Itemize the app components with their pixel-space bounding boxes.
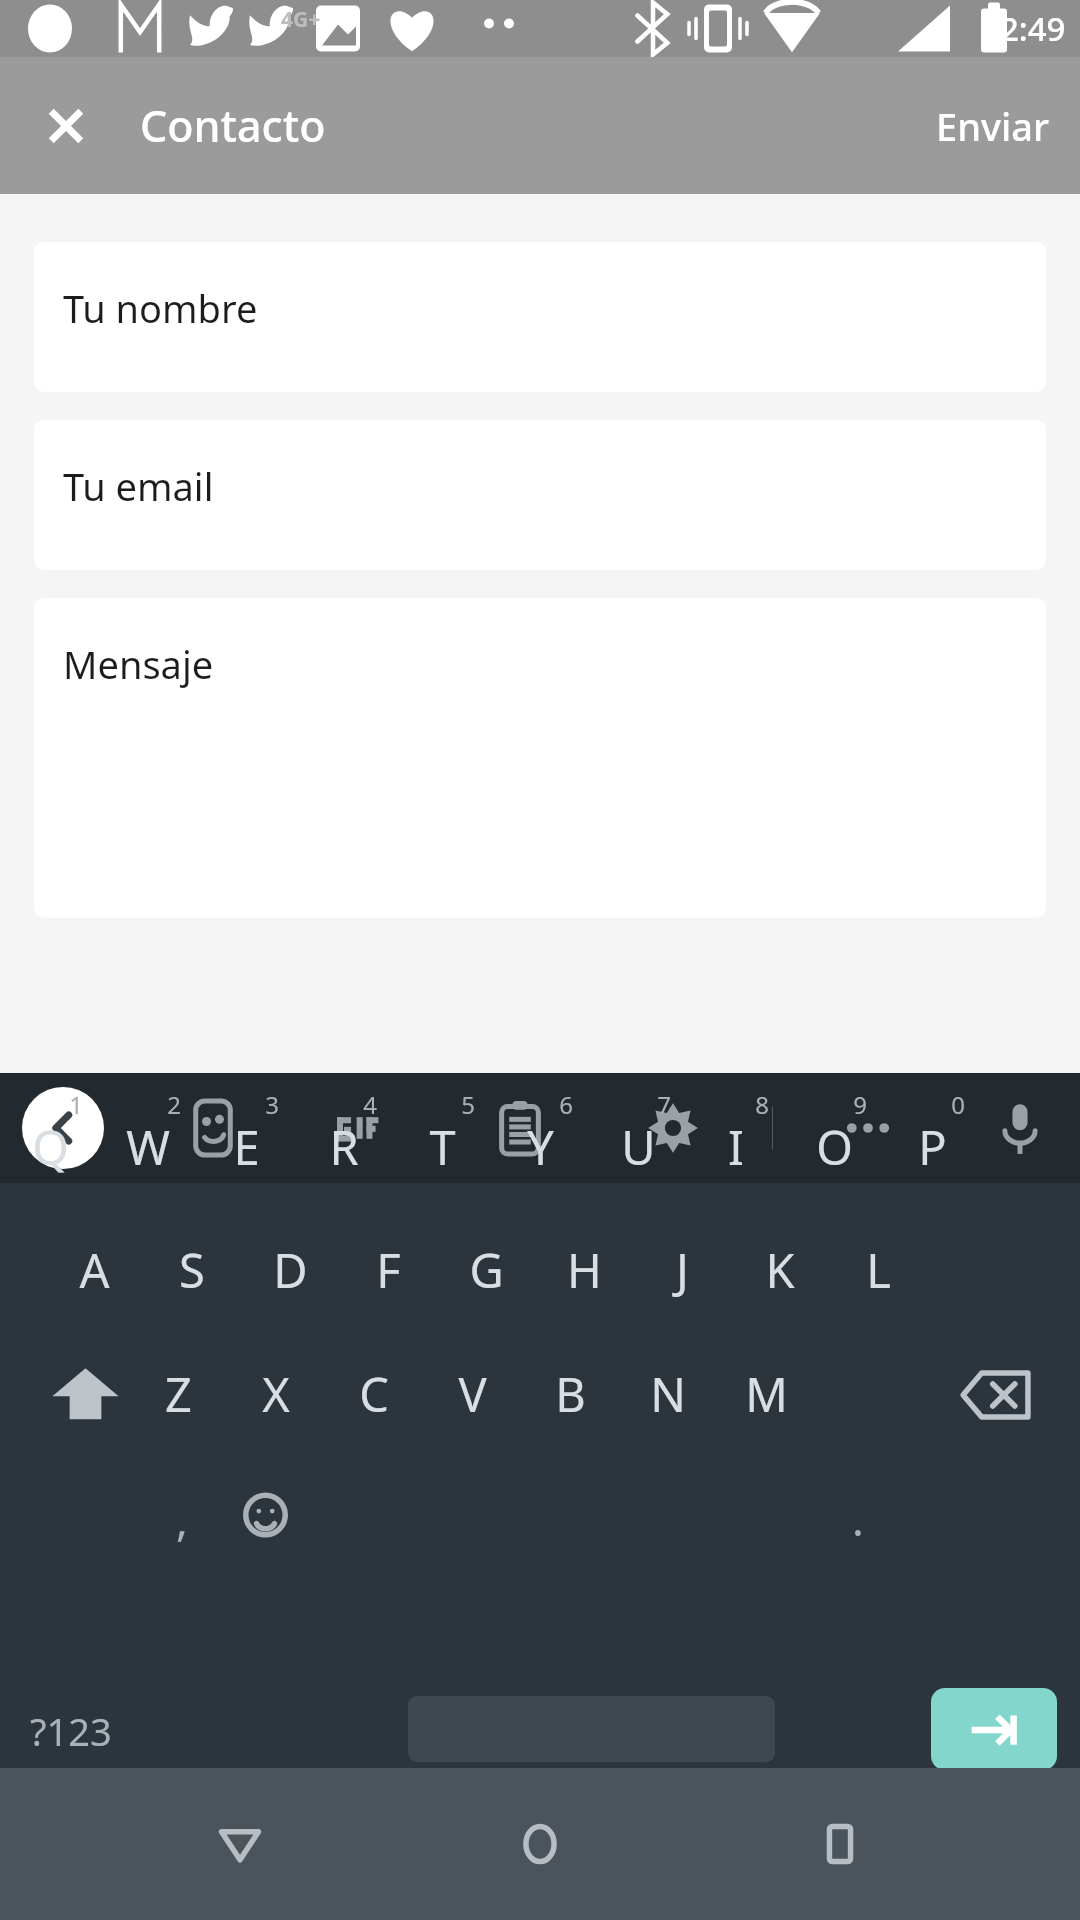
staticText: ?123: [30, 1705, 112, 1757]
button[interactable]: Tu email: [34, 420, 1046, 570]
button[interactable]: C: [325, 1346, 423, 1442]
staticText: P: [918, 1115, 947, 1179]
staticText: J: [676, 1238, 689, 1302]
button[interactable]: S: [143, 1222, 241, 1318]
staticText: S: [179, 1238, 205, 1302]
staticText: 4G+: [281, 5, 321, 34]
staticText: K: [765, 1238, 795, 1302]
staticText: Z: [165, 1362, 192, 1426]
button[interactable]: F: [339, 1222, 437, 1318]
staticText: I: [728, 1115, 744, 1179]
button[interactable]: O: [785, 1099, 883, 1195]
button[interactable]: 3: [223, 1056, 321, 1152]
staticText: B: [555, 1362, 586, 1426]
staticText: C: [359, 1362, 389, 1426]
button[interactable]: 0: [909, 1056, 1007, 1152]
staticText: X: [262, 1362, 290, 1426]
button[interactable]: B: [521, 1346, 619, 1442]
button[interactable]: Z: [129, 1346, 227, 1442]
staticText: Enviar: [936, 100, 1050, 152]
button[interactable]: GIF: [312, 1076, 416, 1180]
button[interactable]: Portapapeles: [468, 1076, 572, 1180]
staticText: Q: [32, 1115, 69, 1179]
button[interactable]: Microfono: [968, 1076, 1072, 1180]
staticText: A: [79, 1238, 110, 1302]
button[interactable]: L: [829, 1222, 927, 1318]
button[interactable]: Q: [1, 1099, 99, 1195]
button[interactable]: A: [45, 1222, 143, 1318]
button[interactable]: I: [687, 1099, 785, 1195]
button[interactable]: 5: [419, 1056, 517, 1152]
button[interactable]: T: [393, 1099, 491, 1195]
button[interactable]: M: [717, 1346, 815, 1442]
staticText: E: [233, 1115, 260, 1179]
button[interactable]: Enviar: [906, 76, 1080, 176]
staticText: Tu email: [63, 460, 214, 512]
button[interactable]: 2: [125, 1056, 223, 1152]
button[interactable]: Tu nombre: [34, 242, 1046, 392]
button[interactable]: Intro: [931, 1688, 1057, 1770]
button[interactable]: 6: [517, 1056, 615, 1152]
staticText: F: [376, 1238, 401, 1302]
button[interactable]: 4: [321, 1056, 419, 1152]
staticText: D: [273, 1238, 308, 1302]
staticText: 0: [951, 1088, 965, 1121]
staticText: 5: [461, 1088, 475, 1121]
staticText: T: [429, 1115, 456, 1179]
staticText: V: [458, 1362, 487, 1426]
button[interactable]: Mensaje: [34, 598, 1046, 918]
button[interactable]: J: [633, 1222, 731, 1318]
button[interactable]: G: [437, 1222, 535, 1318]
staticText: 3: [265, 1088, 279, 1121]
staticText: N: [650, 1362, 686, 1426]
button[interactable]: Atras: [180, 1784, 300, 1904]
button[interactable]: X: [227, 1346, 325, 1442]
button[interactable]: H: [535, 1222, 633, 1318]
button[interactable]: R: [295, 1099, 393, 1195]
button[interactable]: .: [809, 1471, 907, 1567]
staticText: U: [621, 1115, 656, 1179]
staticText: 6: [559, 1088, 573, 1121]
button[interactable]: P: [883, 1099, 981, 1195]
button[interactable]: K: [731, 1222, 829, 1318]
staticText: 8: [755, 1088, 769, 1121]
staticText: 7: [657, 1088, 671, 1121]
staticText: 9: [853, 1088, 867, 1121]
button[interactable]: N: [619, 1346, 717, 1442]
button[interactable]: 7: [615, 1056, 713, 1152]
staticText: 2: [167, 1088, 181, 1121]
button[interactable]: 8: [713, 1056, 811, 1152]
button[interactable]: Ajustes: [621, 1076, 725, 1180]
staticText: M: [745, 1362, 788, 1426]
button[interactable]: V: [423, 1346, 521, 1442]
button[interactable]: 9: [811, 1056, 909, 1152]
button[interactable]: Inicio: [480, 1784, 600, 1904]
button[interactable]: Mayusculas: [22, 1347, 148, 1443]
button[interactable]: Recientes: [780, 1784, 900, 1904]
button[interactable]: Atras: [22, 1087, 104, 1169]
button[interactable]: D: [241, 1222, 339, 1318]
button[interactable]: ,: [133, 1471, 231, 1567]
button[interactable]: 1: [27, 1056, 125, 1152]
button[interactable]: E: [197, 1099, 295, 1195]
button[interactable]: ?123: [8, 1683, 133, 1779]
staticText: H: [567, 1238, 602, 1302]
staticText: 12:49: [981, 6, 1066, 51]
staticText: Contacto: [140, 96, 326, 155]
button[interactable]: Cerrar: [22, 82, 110, 170]
button[interactable]: Stickers: [161, 1076, 265, 1180]
staticText: R: [329, 1115, 359, 1179]
staticText: ,: [176, 1489, 188, 1549]
staticText: G: [469, 1238, 504, 1302]
button[interactable]: Mas opciones: [816, 1076, 920, 1180]
staticText: Tu nombre: [63, 282, 258, 334]
button[interactable]: Retroceso: [932, 1347, 1058, 1443]
button[interactable]: Y: [491, 1099, 589, 1195]
staticText: 1: [69, 1088, 83, 1121]
staticText: W: [126, 1115, 170, 1179]
staticText: .: [852, 1489, 864, 1549]
button[interactable]: W: [99, 1099, 197, 1195]
button[interactable]: Emoji: [222, 1472, 308, 1558]
button[interactable]: U: [589, 1099, 687, 1195]
